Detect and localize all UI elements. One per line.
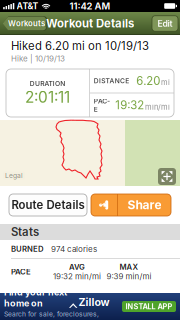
staticText: 19:32 min/mi xyxy=(53,271,101,281)
staticText: Edit xyxy=(157,18,172,29)
staticText: DURATION xyxy=(30,79,65,87)
button[interactable]: Share options xyxy=(91,194,117,216)
staticText: AVG xyxy=(69,262,85,272)
staticText: Route Details xyxy=(11,198,84,212)
staticText: PACE xyxy=(11,267,31,276)
staticText: Workout Details xyxy=(46,17,134,30)
staticText: mi xyxy=(161,78,170,87)
staticText: 19:32 xyxy=(115,98,144,112)
staticText: Stats xyxy=(11,225,39,239)
staticText: Hike | 10/19/13 xyxy=(11,54,65,63)
staticText: 2:01:11 xyxy=(25,88,70,107)
button[interactable]: Edit xyxy=(152,16,178,31)
staticText: Workouts xyxy=(8,19,45,28)
staticText: INSTALL APP xyxy=(125,302,172,311)
button[interactable]: Expand map xyxy=(158,168,180,186)
staticText: 6.20 xyxy=(136,74,160,88)
staticText: min/mi xyxy=(145,102,170,111)
button[interactable]: Route Details xyxy=(9,194,87,216)
staticText: AT&T xyxy=(16,1,38,11)
staticText: Share xyxy=(127,198,161,212)
staticText: MAX xyxy=(119,262,138,272)
staticText: Hiked 6.20 mi on 10/19/13 xyxy=(11,39,149,53)
staticText: PACE xyxy=(94,97,110,113)
staticText: Search for sale, foreclosures, rentals, … xyxy=(4,310,99,320)
staticText: 974 calories xyxy=(51,244,97,254)
button[interactable]: Find your next home on xyxy=(0,293,180,320)
staticText: 11:42 AM xyxy=(69,0,110,12)
button[interactable]: Share xyxy=(118,194,171,216)
staticText: DISTANCE xyxy=(94,77,129,85)
staticText: Find your next home on xyxy=(4,287,67,309)
staticText: 9:39 min/mi xyxy=(106,271,151,281)
staticText: Zillow xyxy=(78,296,109,309)
staticText: BURNED xyxy=(11,244,44,254)
button[interactable]: Workouts xyxy=(2,16,47,31)
staticText: Legal xyxy=(5,171,23,180)
